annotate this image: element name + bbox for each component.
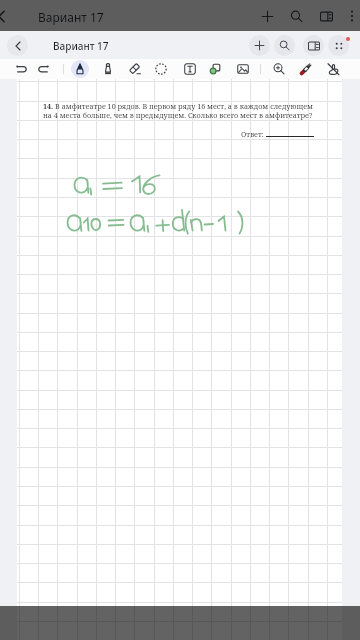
button[interactable]: Red marker [296, 60, 314, 78]
button[interactable]: Undo [13, 60, 31, 78]
button[interactable]: Add [257, 6, 277, 26]
button[interactable]: Redo [34, 60, 52, 78]
button[interactable]: Zoom [270, 60, 288, 78]
button[interactable]: Apps [328, 35, 349, 56]
staticText: Вариант 17 [38, 9, 104, 25]
button[interactable]: Pen [71, 60, 89, 78]
button[interactable]: More options [342, 6, 360, 26]
button[interactable]: Shapes [206, 60, 224, 78]
staticText: Ответ: [241, 129, 264, 139]
staticText: 14. В амфитеатре 10 рядов. В первом ряду… [43, 101, 321, 120]
button[interactable]: Search [274, 35, 295, 56]
button[interactable]: Back [0, 5, 12, 27]
button[interactable]: Eraser [126, 60, 144, 78]
button[interactable]: Highlighter [99, 60, 117, 78]
button[interactable]: Text box [181, 60, 199, 78]
button[interactable]: Insert image [234, 60, 252, 78]
button[interactable]: Add [249, 35, 270, 56]
button[interactable]: Back [7, 35, 28, 56]
button[interactable]: Split view [316, 6, 336, 26]
button[interactable]: Palm rejection [324, 60, 342, 78]
button[interactable]: Search [286, 6, 306, 26]
button[interactable]: Split view [303, 35, 324, 56]
staticText: Вариант 17 [53, 39, 109, 53]
button[interactable]: Lasso select [152, 60, 170, 78]
